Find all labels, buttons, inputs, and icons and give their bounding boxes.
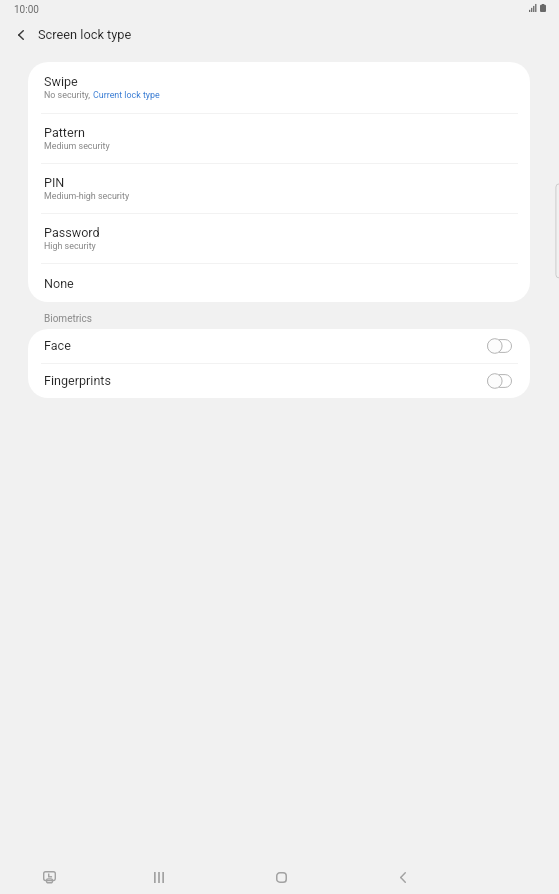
staticText: Face <box>44 338 71 353</box>
button[interactable]: Password <box>28 214 530 263</box>
staticText: Fingerprints <box>44 373 111 388</box>
button[interactable]: Fingerprints <box>28 364 530 398</box>
button[interactable]: Home <box>253 857 309 894</box>
button[interactable]: None <box>28 264 530 302</box>
button[interactable]: Face <box>28 329 530 363</box>
staticText: Biometrics <box>44 313 92 325</box>
staticText: Current lock type <box>93 90 160 100</box>
staticText: None <box>44 276 74 291</box>
button[interactable]: Swipe <box>28 62 530 113</box>
button[interactable]: Recents <box>131 857 187 894</box>
staticText: Swipe <box>44 74 78 89</box>
button[interactable]: Back <box>8 22 34 48</box>
staticText: Medium security <box>44 141 110 151</box>
staticText: 10:00 <box>14 4 39 16</box>
staticText: Screen lock type <box>38 27 132 42</box>
button[interactable]: Pattern <box>28 114 530 163</box>
staticText: Pattern <box>44 125 85 140</box>
staticText: No security, <box>44 90 93 100</box>
button[interactable]: Screen mode <box>21 857 77 894</box>
button[interactable]: Back <box>375 857 431 894</box>
staticText: Medium-high security <box>44 191 130 201</box>
button[interactable]: PIN <box>28 164 530 213</box>
staticText: High security <box>44 241 96 251</box>
staticText: PIN <box>44 175 65 190</box>
staticText: Password <box>44 225 100 240</box>
